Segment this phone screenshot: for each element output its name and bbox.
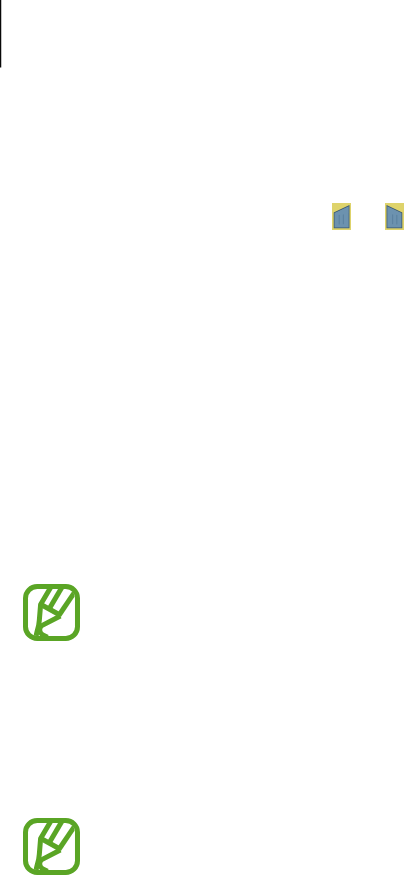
button[interactable]: S Note — [23, 818, 80, 875]
button[interactable]: S Note — [23, 584, 80, 641]
button[interactable]: Manual — [332, 203, 351, 230]
button[interactable]: Manual — [385, 203, 404, 230]
